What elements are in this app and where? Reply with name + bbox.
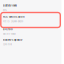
button[interactable]: Battery level [3,4,60,11]
staticText: Battery health [3,33,16,35]
staticText: FCC ID: 2ALRM-BR200 [3,20,23,23]
staticText: Battery level [3,4,17,7]
button[interactable]: Battery capacity [3,38,60,46]
button[interactable]: 84/100 [3,28,60,35]
staticText: 84/100 [3,28,13,31]
staticText: 85% [3,9,7,11]
staticText: Battery capacity [3,38,22,41]
button[interactable]: FCC certification [3,15,60,23]
staticText: 3240 mAh [3,43,12,46]
staticText: FCC certification [3,15,25,18]
